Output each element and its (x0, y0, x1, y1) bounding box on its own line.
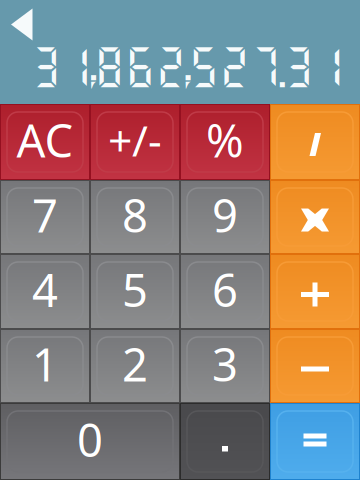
button[interactable]: 3 (180, 329, 270, 403)
button[interactable]: 4 (0, 254, 90, 329)
staticText: 4 (32, 259, 58, 320)
staticText: 1 (32, 334, 58, 394)
staticText: +/- (108, 112, 162, 168)
button[interactable]: 6 (180, 254, 270, 329)
button[interactable]: 9 (180, 180, 270, 254)
staticText: 2 (122, 334, 148, 394)
button[interactable]: 5 (90, 254, 180, 329)
staticText: 0 (77, 409, 103, 470)
staticText: 6 (212, 259, 238, 320)
button[interactable]: Decimal point (180, 403, 270, 480)
button[interactable]: 2 (90, 329, 180, 403)
button[interactable]: Divide (270, 104, 360, 180)
button[interactable]: Multiply (270, 180, 360, 254)
button[interactable]: 1 (0, 329, 90, 403)
button[interactable]: 0 (0, 403, 180, 480)
staticText: AC (16, 110, 73, 170)
button[interactable]: Add (270, 254, 360, 329)
staticText: 31,862,527.31 (30, 40, 345, 92)
button[interactable]: Equals (270, 403, 360, 480)
staticText: 5 (122, 259, 148, 320)
button[interactable]: % (180, 104, 270, 180)
staticText: 3 (212, 334, 238, 394)
staticText: 8 (122, 185, 148, 245)
button[interactable]: AC (0, 104, 90, 180)
button[interactable]: 7 (0, 180, 90, 254)
staticText: % (206, 110, 244, 170)
staticText: 9 (212, 185, 238, 245)
staticText: 7 (32, 185, 58, 245)
button[interactable]: Back (10, 6, 56, 49)
button[interactable]: Subtract (270, 329, 360, 403)
button[interactable]: 8 (90, 180, 180, 254)
button[interactable]: +/- (90, 104, 180, 180)
